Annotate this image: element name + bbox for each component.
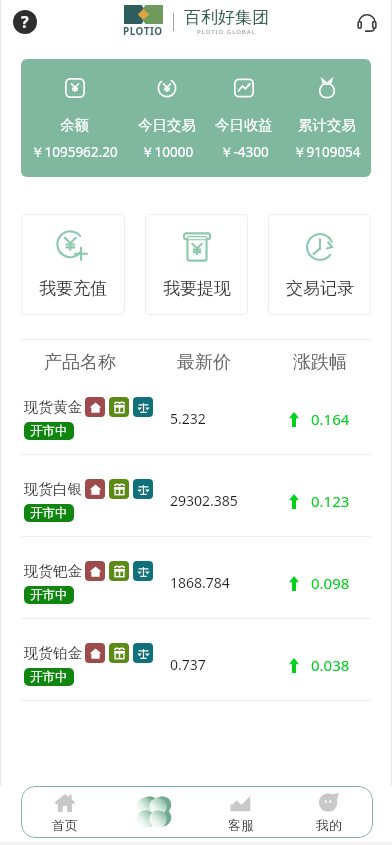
staticText: 0.737 [170, 655, 206, 674]
staticText: 现货白银 [24, 480, 82, 498]
button[interactable]: 首页 [21, 786, 109, 838]
staticText: 客服 [228, 817, 254, 833]
staticText: 0.123 [311, 491, 350, 511]
button[interactable]: 我要充值 [21, 214, 125, 315]
staticText: 我要提现 [163, 278, 231, 299]
staticText: 我的 [316, 817, 342, 833]
staticText: 最新价 [177, 351, 231, 373]
staticText: 开市中 [30, 505, 68, 521]
staticText: 开市中 [30, 423, 68, 439]
button[interactable]: 现货钯金 [21, 537, 371, 618]
staticText: 今日交易 [138, 116, 196, 134]
staticText: 产品名称 [44, 351, 116, 373]
staticText: ? [21, 11, 29, 33]
staticText: 5.232 [170, 409, 206, 428]
button[interactable]: Trade [109, 786, 197, 838]
staticText: 交易记录 [286, 278, 354, 299]
button[interactable]: Customer service [355, 10, 379, 34]
button[interactable]: Help [13, 10, 37, 34]
staticText: 开市中 [30, 669, 68, 685]
staticText: 0.164 [311, 409, 350, 429]
staticText: 今日收益 [215, 116, 273, 134]
staticText: 现货铂金 [24, 644, 82, 662]
button[interactable]: 客服 [197, 786, 285, 838]
staticText: 0.098 [311, 573, 350, 593]
staticText: 1868.784 [170, 573, 230, 592]
staticText: 现货黄金 [24, 398, 82, 416]
staticText: 我要充值 [39, 278, 107, 299]
staticText: ￥10000 [141, 143, 194, 161]
button[interactable]: 交易记录 [268, 214, 371, 315]
staticText: 累计交易 [298, 116, 356, 134]
button[interactable]: 我要提现 [145, 214, 248, 315]
staticText: PLOTIO [123, 24, 163, 38]
staticText: 29302.385 [170, 491, 238, 510]
staticText: ￥-4300 [220, 143, 269, 161]
staticText: 现货钯金 [24, 562, 82, 580]
staticText: 百利好集团 [184, 7, 269, 28]
button[interactable]: 我的 [285, 786, 373, 838]
button[interactable]: 现货铂金 [21, 619, 371, 700]
staticText: ￥1095962.20 [31, 143, 118, 161]
staticText: 开市中 [30, 587, 68, 603]
button[interactable]: 现货黄金 [21, 373, 371, 454]
staticText: 0.038 [311, 655, 350, 675]
staticText: ￥9109054 [293, 143, 361, 161]
button[interactable]: 现货白银 [21, 455, 371, 536]
staticText: 涨跌幅 [293, 351, 347, 373]
staticText: 首页 [52, 817, 78, 833]
staticText: 余额 [60, 116, 89, 134]
staticText: PLOTIO GLOBAL [197, 28, 256, 36]
